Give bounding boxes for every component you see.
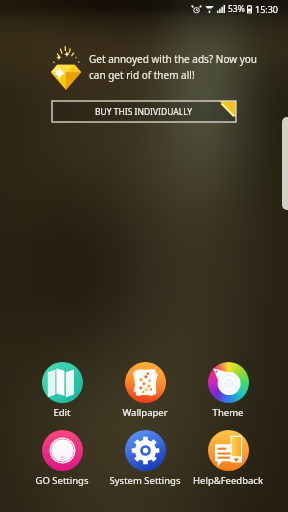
staticText: 15:30	[255, 3, 279, 15]
button[interactable]: Edit	[18, 362, 106, 424]
staticText: Help&Feedback	[184, 474, 272, 487]
staticText: System Settings	[101, 474, 189, 487]
button[interactable]: GO Settings	[18, 430, 106, 492]
button[interactable]: Wallpaper	[101, 362, 189, 424]
other: Alarm	[192, 5, 201, 14]
button[interactable]: System Settings	[101, 430, 189, 492]
staticText: Theme	[184, 406, 272, 419]
staticText: can get rid of them all!	[89, 68, 195, 82]
button[interactable]: BUY THIS INDIVIDUALLY	[52, 101, 236, 122]
button[interactable]: Theme	[184, 362, 272, 424]
staticText: 53%	[228, 3, 245, 15]
staticText: Wallpaper	[101, 406, 189, 419]
button[interactable]: Help&Feedback	[184, 430, 272, 492]
staticText: GO Settings	[18, 474, 106, 487]
staticText: Get annoyed with the ads? Now you	[89, 52, 258, 66]
staticText: Edit	[18, 406, 106, 419]
staticText: BUY THIS INDIVIDUALLY	[95, 106, 193, 118]
